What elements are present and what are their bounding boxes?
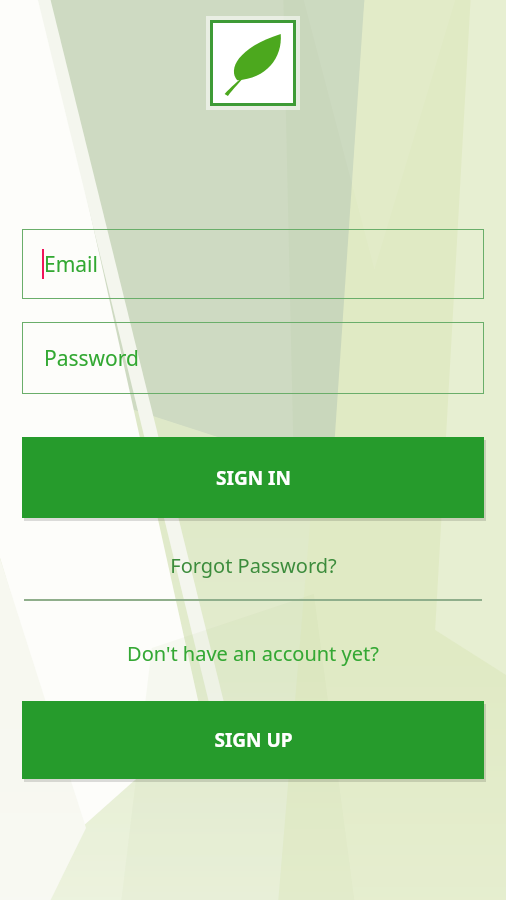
button[interactable]: Forgot Password? (0, 545, 506, 585)
staticText: Don't have an account yet? (127, 640, 379, 667)
button[interactable]: SIGN UP (22, 701, 484, 779)
staticText: SIGN UP (214, 727, 293, 753)
button[interactable]: Password (22, 322, 484, 394)
staticText: SIGN IN (216, 465, 291, 491)
staticText: Email (44, 250, 98, 279)
button[interactable]: SIGN IN (22, 437, 484, 518)
button[interactable]: Don't have an account yet? (0, 632, 506, 674)
staticText: Forgot Password? (170, 552, 337, 579)
staticText: Password (44, 344, 139, 373)
button[interactable]: Email (22, 229, 484, 299)
